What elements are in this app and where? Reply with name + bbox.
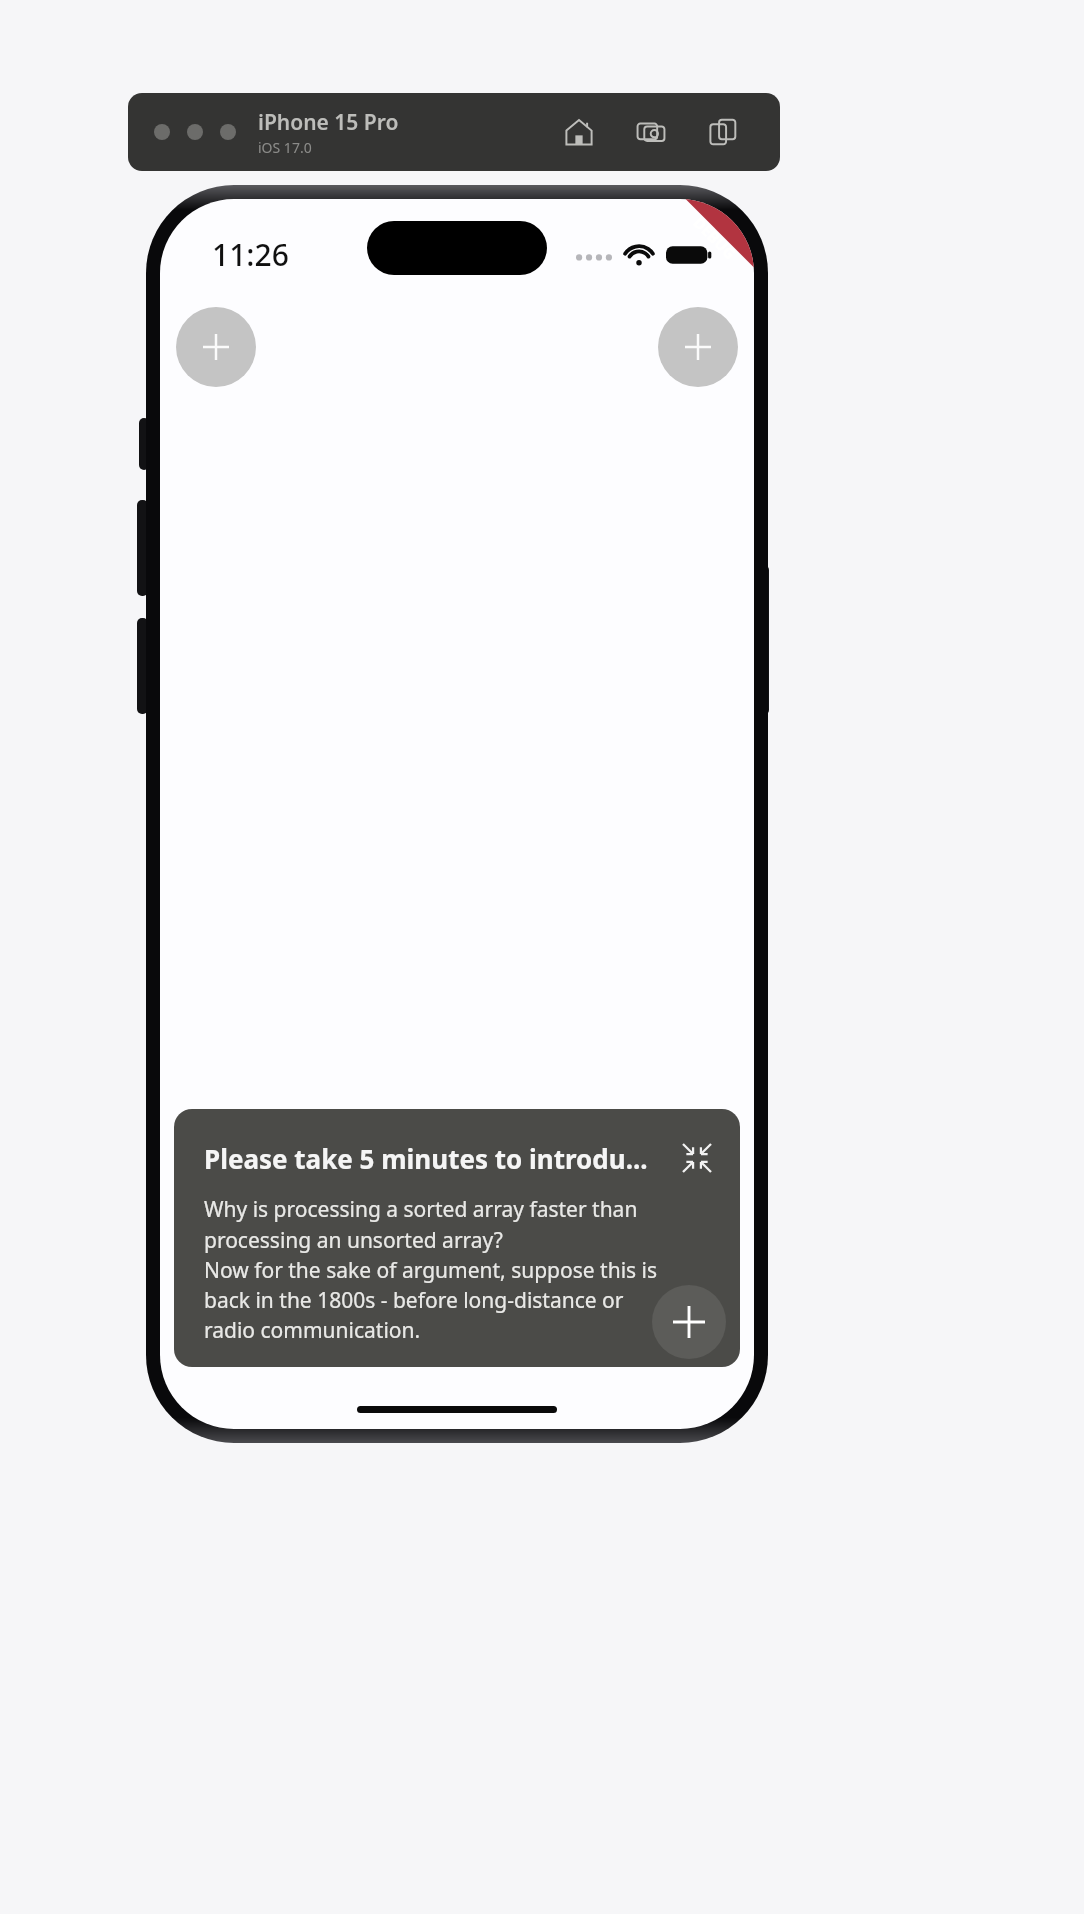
staticText: 11:26 xyxy=(212,234,289,275)
button[interactable]: Add entry xyxy=(652,1285,726,1359)
button[interactable]: Add xyxy=(658,307,738,387)
button[interactable]: Rotate xyxy=(702,111,744,153)
staticText: Why is processing a sorted array faster … xyxy=(204,1195,658,1344)
button[interactable]: Volume down xyxy=(137,618,148,714)
staticText: Please take 5 minutes to introdu... xyxy=(204,1141,674,1176)
button[interactable]: Add xyxy=(176,307,256,387)
staticText: DEBUG xyxy=(689,212,740,263)
button[interactable]: Window button xyxy=(154,124,170,140)
button[interactable]: Window button xyxy=(187,124,203,140)
button[interactable]: Screenshot xyxy=(630,111,672,153)
staticText: iOS 17.0 xyxy=(258,138,312,157)
staticText: iPhone 15 Pro xyxy=(258,108,399,137)
button[interactable]: Please take 5 minutes to introdu... xyxy=(174,1109,740,1367)
button[interactable]: Power xyxy=(758,565,769,715)
button[interactable]: Home xyxy=(558,111,600,153)
button[interactable]: Volume up xyxy=(137,500,148,596)
button[interactable]: Silent switch xyxy=(139,418,149,470)
button[interactable]: Collapse xyxy=(674,1135,720,1181)
button[interactable]: Window button xyxy=(220,124,236,140)
